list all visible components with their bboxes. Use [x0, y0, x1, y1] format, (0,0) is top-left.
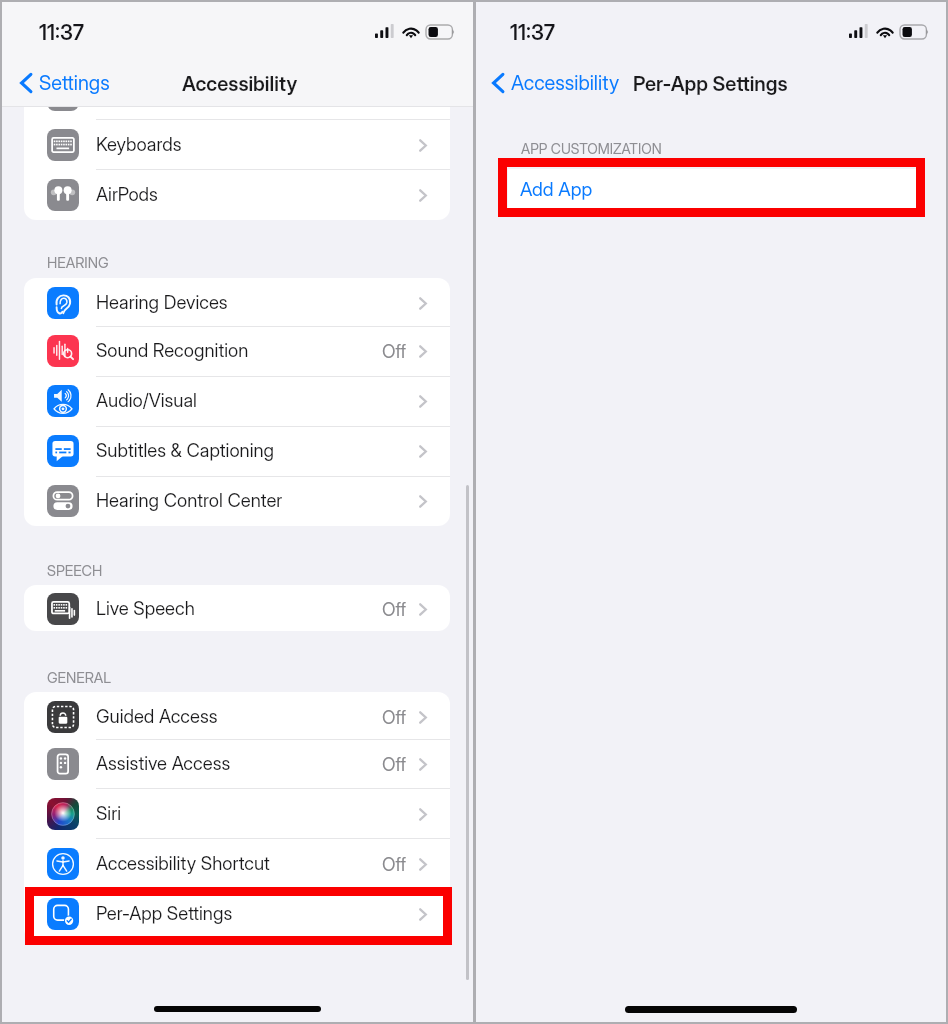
staticText: Subtitles & Captioning	[96, 439, 275, 461]
button[interactable]: Sound Recognition	[24, 326, 450, 376]
staticText: Add App	[520, 178, 593, 201]
staticText: Accessibility Shortcut	[96, 852, 270, 874]
staticText: APP CUSTOMIZATION	[521, 140, 662, 157]
staticText: 11:37	[510, 20, 556, 45]
staticText: HEARING	[47, 254, 109, 272]
staticText: Assistive Access	[96, 752, 231, 774]
staticText: Accessibility	[511, 71, 620, 95]
button[interactable]: Live Speech	[24, 584, 450, 634]
staticText: SPEECH	[47, 562, 103, 580]
staticText: Keyboards	[96, 133, 182, 155]
staticText: AirPods	[96, 183, 158, 205]
staticText: Hearing Control Center	[96, 489, 283, 511]
staticText: Off	[382, 854, 406, 876]
button[interactable]: Subtitles & Captioning	[24, 426, 450, 476]
staticText: Hearing Devices	[96, 291, 228, 313]
button[interactable]: Hearing Devices	[24, 278, 450, 328]
button[interactable]: Back to Accessibility	[489, 69, 622, 97]
staticText: Off	[382, 707, 406, 729]
staticText: Off	[382, 599, 406, 621]
staticText: Off	[382, 341, 406, 363]
staticText: Sound Recognition	[96, 339, 249, 361]
button[interactable]: Assistive Access	[24, 739, 450, 789]
button[interactable]: Hearing Control Center	[24, 476, 450, 526]
staticText: 11:37	[39, 20, 85, 45]
staticText: GENERAL	[47, 669, 112, 687]
button[interactable]: Per-App Settings	[24, 889, 450, 939]
staticText: Siri	[96, 802, 121, 824]
staticText: Guided Access	[96, 705, 218, 727]
staticText: Live Speech	[96, 597, 195, 619]
button[interactable]: Guided Access	[24, 692, 450, 742]
staticText: Settings	[39, 71, 110, 95]
staticText: Per-App Settings	[633, 72, 788, 96]
staticText: Off	[382, 754, 406, 776]
staticText: Per-App Settings	[96, 902, 233, 924]
button[interactable]: Keyboards	[24, 120, 450, 170]
button[interactable]: Accessibility Shortcut	[24, 839, 450, 889]
button[interactable]: Siri	[24, 789, 450, 839]
button[interactable]: AirPods	[24, 170, 450, 220]
staticText: Audio/Visual	[96, 389, 197, 411]
button[interactable]: Back to Settings	[17, 69, 112, 97]
button[interactable]: Add App	[508, 169, 916, 209]
button[interactable]: Audio/Visual	[24, 376, 450, 426]
staticText: Accessibility	[182, 72, 298, 96]
